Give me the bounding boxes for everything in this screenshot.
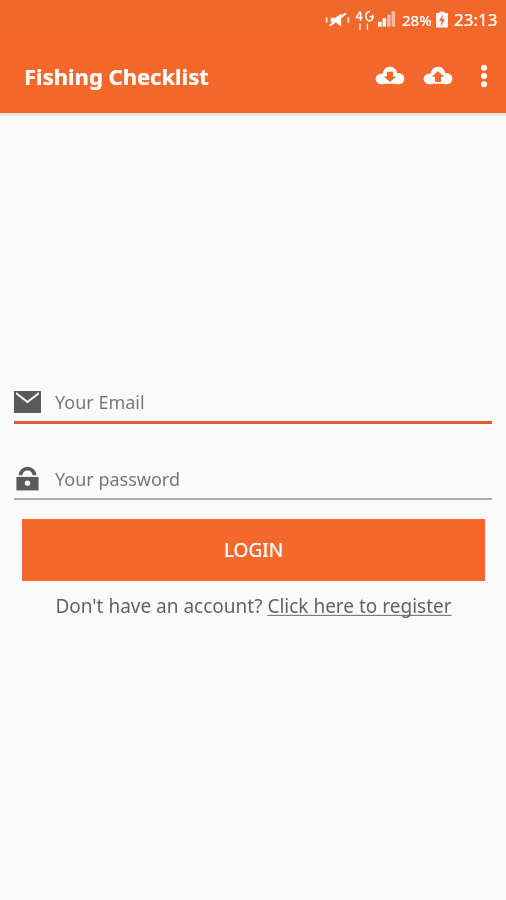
button[interactable]: Don't have an account? Click here to reg… — [24, 593, 482, 619]
button[interactable]: Your Email — [14, 383, 492, 421]
staticText: Your Email — [55, 390, 145, 415]
button[interactable]: Your password — [14, 460, 492, 498]
button[interactable]: LOGIN — [22, 519, 485, 581]
staticText: 28% — [402, 10, 432, 30]
button[interactable]: More options — [462, 54, 506, 98]
staticText: LOGIN — [224, 537, 284, 563]
staticText: 23:13 — [454, 8, 498, 31]
staticText: Your password — [55, 467, 181, 492]
staticText: Fishing Checklist — [24, 61, 209, 91]
button[interactable]: Upload — [414, 52, 462, 100]
staticText: Don't have an account? Click here to reg… — [55, 593, 452, 619]
button[interactable]: Download — [366, 52, 414, 100]
